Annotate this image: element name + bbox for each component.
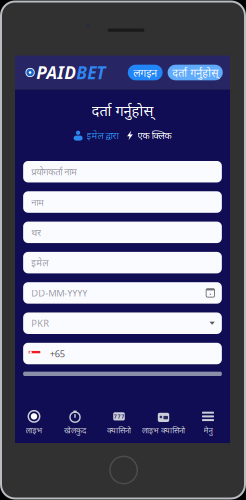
staticText: मेनु: [203, 425, 212, 435]
staticText: प्रयोगकर्ता नाम: [31, 165, 77, 178]
button[interactable]: दर्ता गर्नुहोस्: [168, 65, 223, 80]
button[interactable]: 7: [97, 408, 141, 438]
staticText: BET: [76, 61, 105, 84]
button[interactable]: इमेल द्वारा: [73, 129, 118, 142]
staticText: इमेल द्वारा: [86, 129, 118, 142]
staticText: लाइभ: [25, 425, 42, 435]
staticText: इमेल: [31, 256, 48, 269]
button[interactable]: मेनु: [186, 408, 230, 438]
staticText: दर्ता गर्नुहोस्: [91, 100, 153, 120]
staticText: 7: [114, 413, 117, 420]
staticText: 7: [121, 413, 124, 420]
button[interactable]: लगइन: [128, 65, 163, 80]
staticText: नाम: [31, 196, 44, 208]
staticText: थर: [31, 226, 41, 238]
staticText: खेलकुद: [64, 425, 86, 435]
button[interactable]: लाइभ: [15, 408, 53, 438]
staticText: DD-MM-YYYY: [31, 287, 87, 299]
staticText: लाइभ क्यासिनो: [142, 425, 185, 435]
staticText: लगइन: [133, 65, 157, 80]
staticText: क्यासिनो: [107, 425, 131, 435]
staticText: PKR: [31, 317, 49, 329]
staticText: PAID: [36, 61, 76, 84]
button[interactable]: एक क्लिक: [127, 129, 171, 142]
staticText: 7: [117, 413, 120, 420]
staticText: एक क्लिक: [137, 129, 171, 142]
button[interactable]: लाइभ क्यासिनो: [141, 408, 186, 438]
staticText: दर्ता गर्नुहोस्: [172, 65, 218, 80]
staticText: +65: [50, 347, 65, 360]
button[interactable]: खेलकुद: [53, 408, 97, 438]
